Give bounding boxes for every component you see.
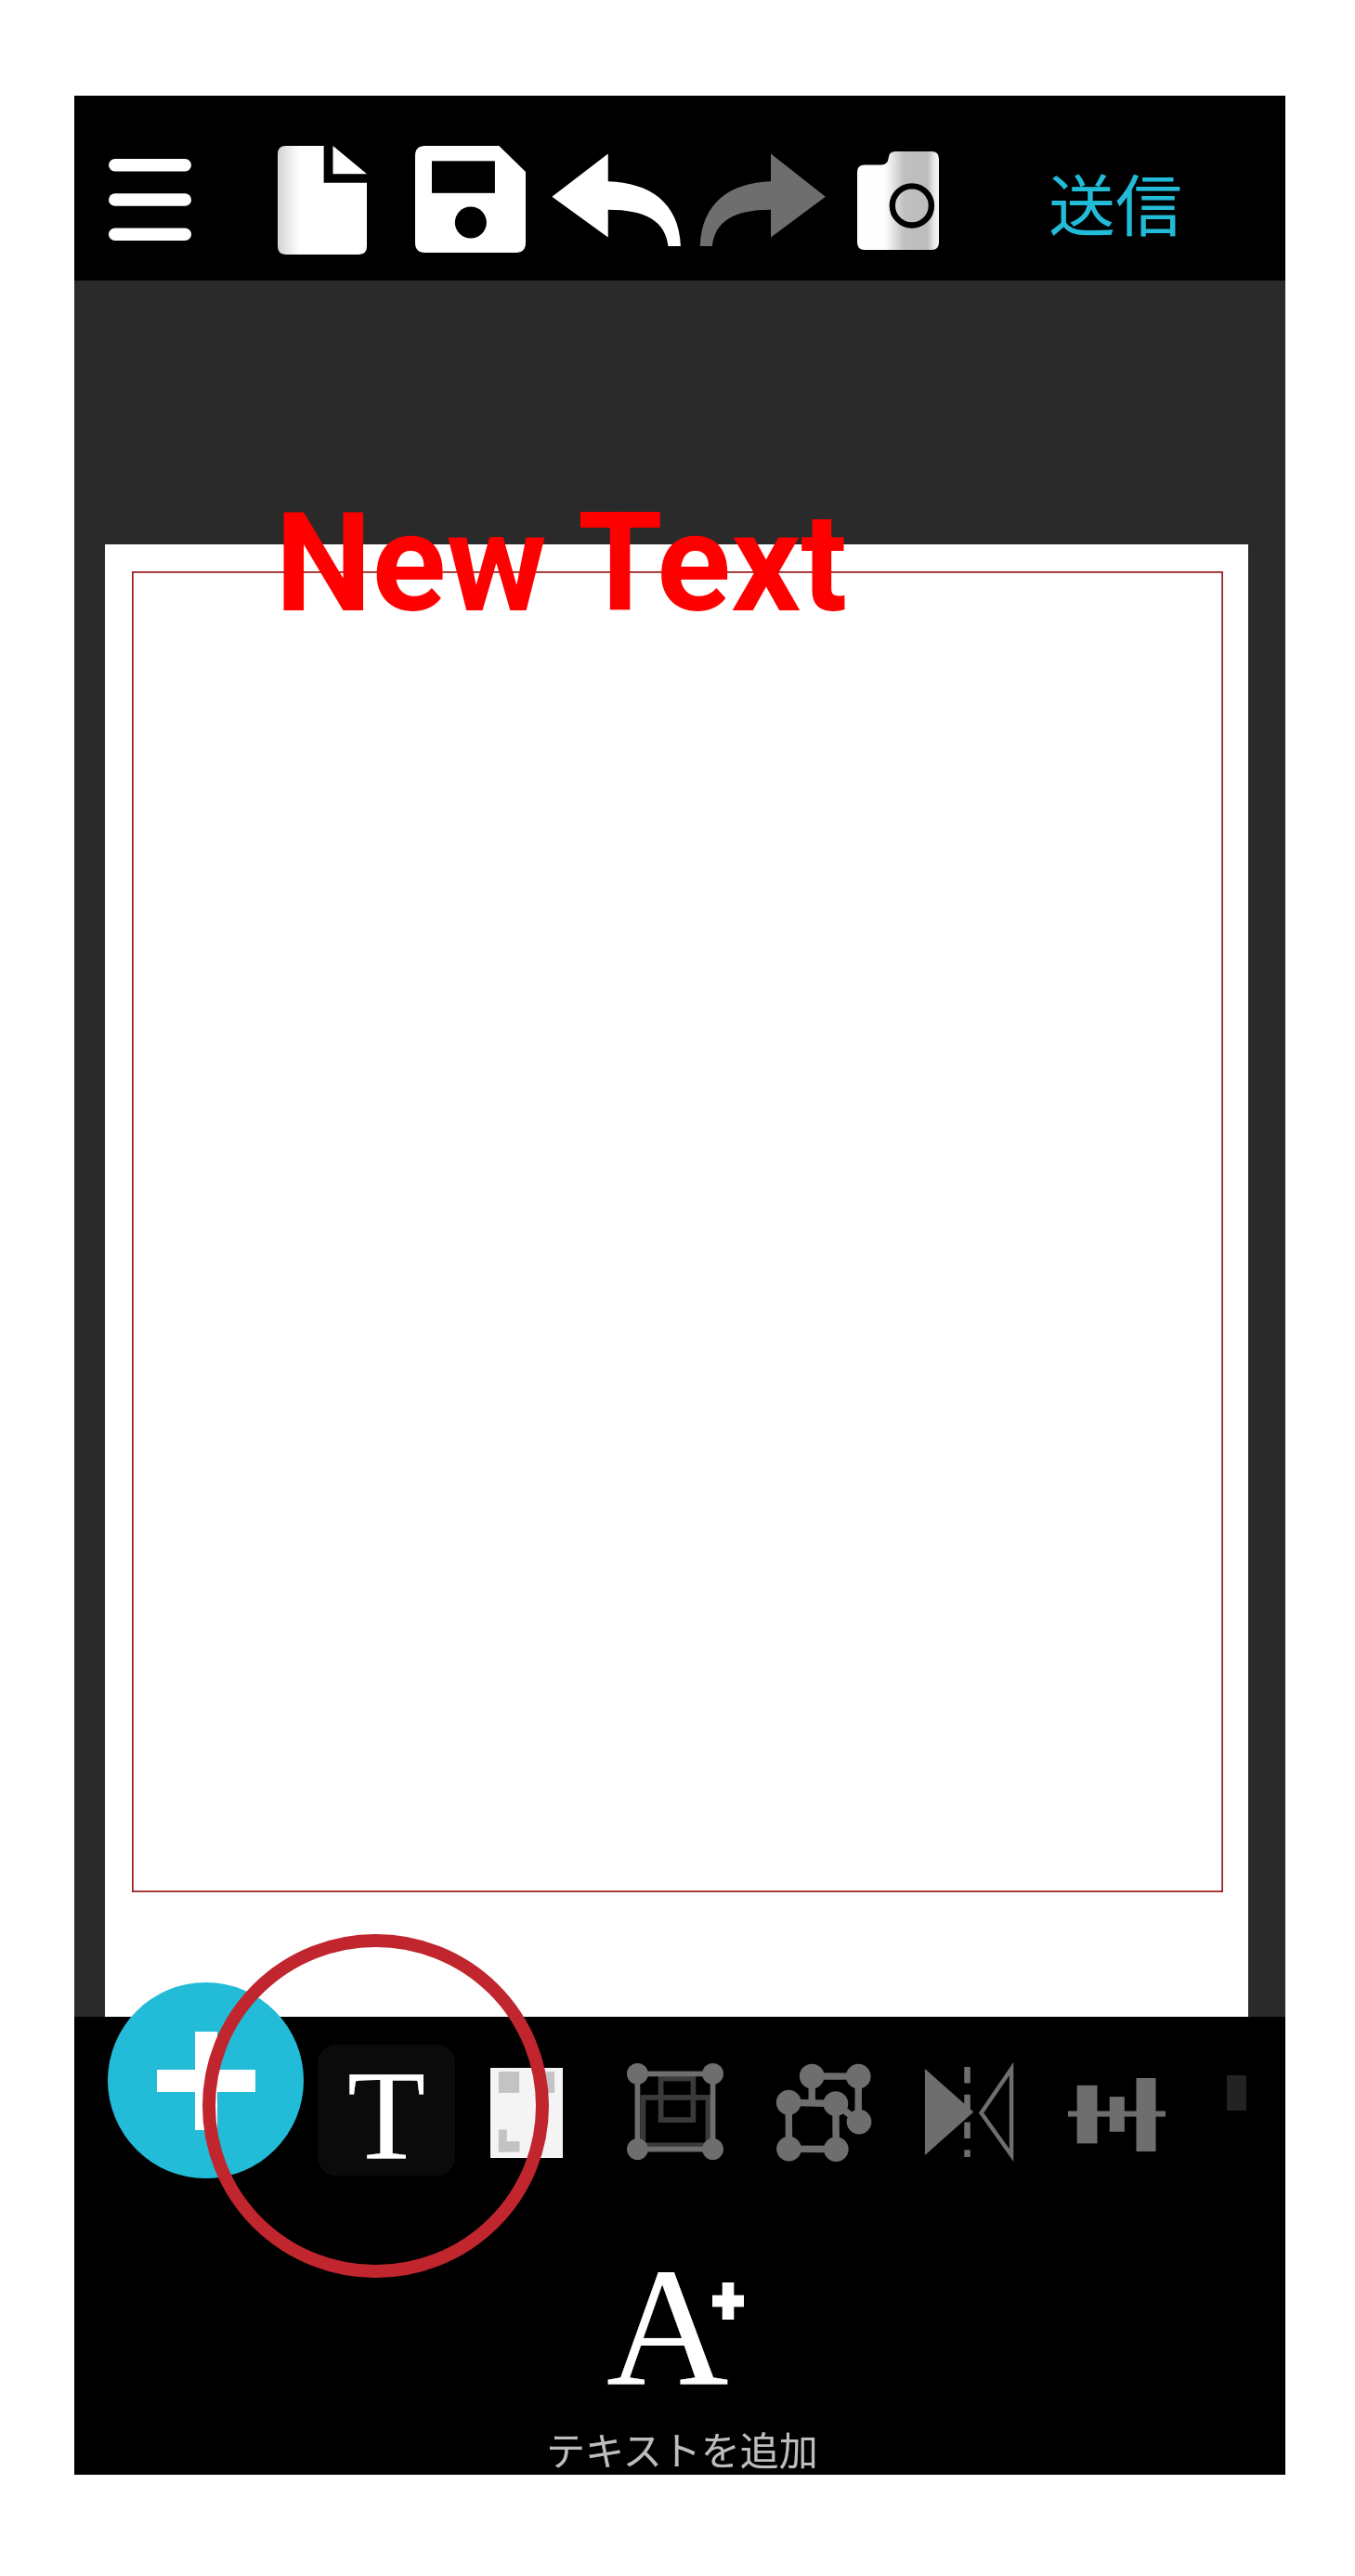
button[interactable]: New document: [268, 137, 376, 264]
button[interactable]: 送信: [1035, 150, 1196, 252]
staticText: A: [606, 2234, 729, 2420]
button[interactable]: Undo: [539, 144, 697, 255]
button[interactable]: Redo: [687, 144, 845, 255]
button[interactable]: Image tool: [481, 2059, 572, 2166]
staticText: New Text: [275, 483, 848, 644]
staticText: 送信: [1049, 152, 1183, 249]
button[interactable]: Save: [406, 137, 535, 262]
button[interactable]: Nodes: [760, 2046, 889, 2178]
button[interactable]: Add element: [108, 1982, 304, 2178]
button[interactable]: Add text: [520, 2230, 854, 2416]
button[interactable]: Transform: [608, 2045, 742, 2178]
button[interactable]: Text tool: [318, 2045, 455, 2176]
button[interactable]: Flip: [905, 2048, 1032, 2176]
button[interactable]: Menu: [98, 150, 201, 250]
button[interactable]: Align: [1049, 2059, 1184, 2170]
button[interactable]: Camera: [848, 142, 948, 259]
staticText: テキストを追加: [546, 2420, 818, 2477]
staticText: T: [347, 2045, 426, 2176]
